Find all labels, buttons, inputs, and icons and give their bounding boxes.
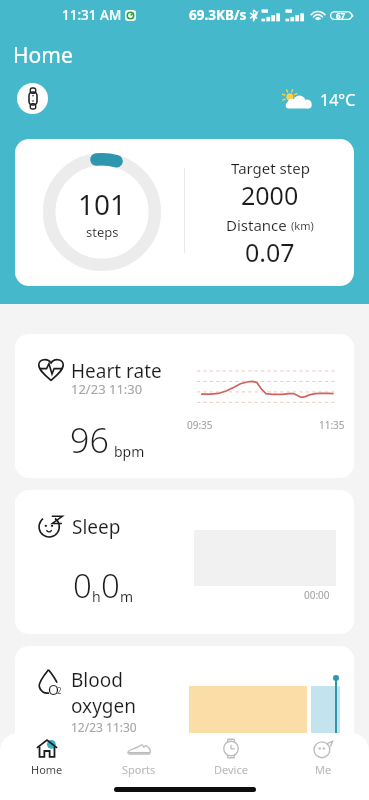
button[interactable]: Home (0, 738, 93, 786)
staticText: 2 (57, 685, 62, 696)
staticText: 0.07 (245, 235, 295, 269)
staticText: bpm (114, 442, 145, 461)
button[interactable]: O (15, 646, 354, 790)
staticText: Blood (71, 667, 123, 693)
staticText: 09:35 (187, 418, 213, 432)
staticText: 2000 (241, 178, 299, 212)
staticText: m (120, 587, 134, 606)
staticText: Home (13, 41, 73, 70)
staticText: h (92, 587, 101, 606)
button[interactable]: Weather (281, 89, 356, 111)
staticText: Heart rate (71, 358, 162, 384)
staticText: Device (214, 762, 248, 777)
staticText: Distance (226, 215, 287, 235)
staticText: 0 (101, 563, 120, 608)
staticText: 67 (336, 10, 346, 21)
button[interactable]: Device (185, 738, 277, 786)
button[interactable]: My device (17, 83, 48, 114)
staticText: O (48, 680, 59, 699)
staticText: 101 (78, 185, 127, 223)
button[interactable]: Heart rate (15, 334, 354, 478)
staticText: oxygen (71, 693, 136, 719)
button[interactable]: Me (277, 738, 369, 786)
staticText: 11:35 (319, 418, 345, 432)
button[interactable]: Sports (93, 738, 185, 786)
staticText: (km) (291, 218, 314, 233)
staticText: Me (315, 762, 332, 777)
staticText: 14°C (320, 89, 356, 111)
staticText: Sports (122, 762, 156, 777)
staticText: Target step (231, 158, 310, 178)
staticText: 00:00 (304, 588, 330, 602)
staticText: 12/23 11:30 (71, 719, 137, 735)
staticText: 12/23 11:30 (71, 380, 143, 398)
button[interactable]: Sleep (15, 490, 354, 634)
staticText: 96 (70, 417, 109, 463)
staticText: Sleep (72, 514, 121, 540)
staticText: Home (31, 762, 63, 777)
staticText: 0 (73, 563, 92, 608)
staticText: 11:31 AM (62, 6, 122, 24)
staticText: steps (86, 223, 119, 241)
button[interactable]: 101 (15, 139, 354, 286)
staticText: 69.3KB/s (189, 6, 247, 24)
